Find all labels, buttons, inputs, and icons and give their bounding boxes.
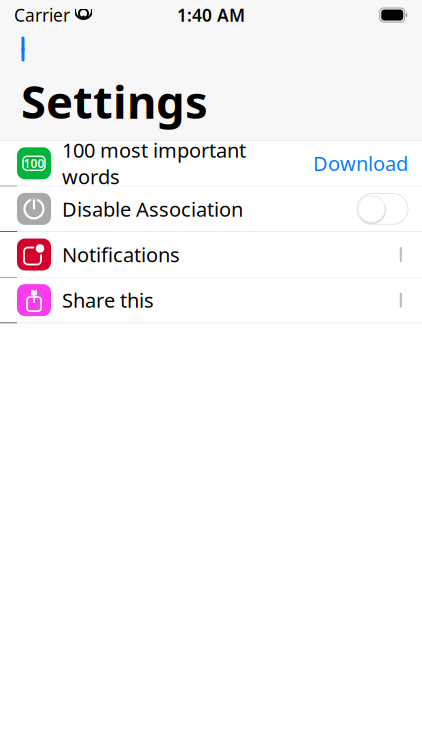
staticText: Share this [62, 287, 154, 313]
staticText: 100 most important words [62, 137, 246, 190]
staticText: Notifications [62, 241, 180, 268]
button[interactable]: Back [0, 32, 41, 66]
staticText: Download [313, 150, 408, 177]
staticText: 1:40 AM [177, 3, 245, 26]
button[interactable]: Disable Association [357, 193, 408, 224]
staticText: Disable Association [62, 196, 243, 222]
staticText: 100 [23, 155, 44, 171]
button[interactable]: Notifications [0, 232, 422, 278]
button[interactable]: Share this [0, 278, 422, 323]
staticText: Carrier [14, 3, 70, 26]
staticText: Settings [21, 71, 208, 131]
button[interactable]: 100 [0, 141, 422, 186]
